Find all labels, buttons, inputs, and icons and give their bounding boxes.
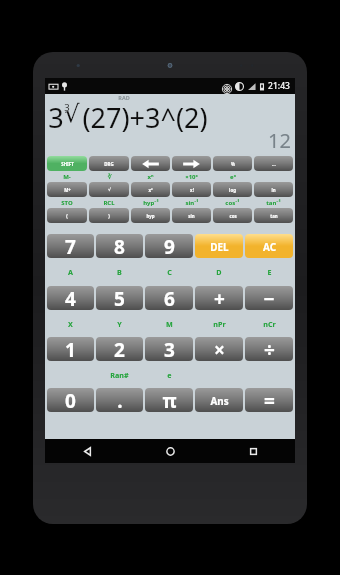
button[interactable]: x²	[131, 182, 170, 197]
staticText: .	[117, 388, 123, 412]
button[interactable]: Recent apps	[212, 439, 295, 463]
staticText: tan	[270, 213, 278, 219]
button[interactable]: DRG	[89, 156, 129, 171]
staticText: A	[68, 267, 73, 277]
staticText: DRG	[104, 161, 114, 167]
staticText: x!	[190, 187, 194, 193]
button[interactable]: 8	[96, 234, 143, 258]
button[interactable]: hyp	[131, 208, 170, 223]
staticText: hyp	[146, 213, 155, 219]
staticText: 12	[268, 127, 291, 154]
staticText: hyp⁻¹	[143, 199, 159, 207]
staticText: eˣ	[230, 173, 236, 181]
staticText: ×	[214, 337, 225, 361]
staticText: RCL	[103, 199, 115, 207]
staticText: ∛	[107, 173, 112, 180]
button[interactable]: …	[254, 156, 293, 171]
staticText: SHIFT	[61, 161, 74, 167]
staticText: %	[231, 161, 235, 167]
button[interactable]: 0	[47, 388, 94, 412]
button[interactable]: =	[245, 388, 293, 412]
button[interactable]: Ans	[195, 388, 243, 412]
staticText: E	[267, 267, 272, 277]
button[interactable]: tan	[254, 208, 293, 223]
staticText: D	[216, 267, 222, 277]
button[interactable]: cos	[213, 208, 252, 223]
button[interactable]: DEL	[195, 234, 243, 258]
staticText: M	[166, 319, 173, 329]
button[interactable]: Back	[45, 439, 129, 463]
staticText: RAD	[118, 94, 130, 101]
staticText: AC	[263, 240, 276, 253]
staticText: =	[264, 388, 275, 412]
button[interactable]: SHIFT	[47, 156, 87, 171]
button[interactable]: sin	[172, 208, 211, 223]
staticText: 1	[65, 337, 76, 361]
button[interactable]: log	[213, 182, 252, 197]
staticText: ln	[271, 187, 276, 193]
button[interactable]: +	[195, 286, 243, 310]
button[interactable]: 7	[47, 234, 94, 258]
button[interactable]: Cursor right	[172, 156, 211, 171]
staticText: 7	[65, 234, 76, 258]
staticText: e	[167, 370, 172, 380]
staticText: Ran#	[110, 370, 129, 380]
staticText: DEL	[210, 240, 229, 253]
staticText: 21:43	[268, 80, 290, 92]
button[interactable]: M+	[47, 182, 87, 197]
button[interactable]: √	[89, 182, 129, 197]
button[interactable]: (	[47, 208, 87, 223]
button[interactable]: AC	[245, 234, 293, 258]
staticText: 6	[164, 286, 175, 310]
staticText: Y	[117, 319, 122, 329]
staticText: ÷	[264, 337, 275, 361]
staticText: (	[66, 213, 68, 219]
staticText: 9	[164, 234, 175, 258]
staticText: M-	[63, 173, 71, 181]
staticText: 2	[114, 337, 125, 361]
button[interactable]: %	[213, 156, 252, 171]
staticText: log	[229, 187, 236, 193]
staticText: xⁿ	[147, 173, 154, 181]
button[interactable]: .	[96, 388, 143, 412]
staticText: 3	[64, 101, 70, 114]
staticText: nCr	[263, 319, 276, 329]
button[interactable]: 5	[96, 286, 143, 310]
button[interactable]: ln	[254, 182, 293, 197]
staticText: nPr	[213, 319, 226, 329]
staticText: √	[64, 100, 80, 128]
staticText: +	[214, 286, 225, 310]
staticText: STO	[61, 199, 73, 207]
staticText: sin	[188, 213, 195, 219]
staticText: 5	[114, 286, 125, 310]
button[interactable]: Cursor left	[131, 156, 170, 171]
staticText: )	[108, 213, 110, 219]
button[interactable]: 4	[47, 286, 94, 310]
button[interactable]: −	[245, 286, 293, 310]
button[interactable]: π	[145, 388, 193, 412]
staticText: tan⁻¹	[266, 199, 281, 207]
staticText: ×10ˣ	[185, 173, 198, 181]
button[interactable]: 1	[47, 337, 94, 361]
staticText: 4	[65, 286, 76, 310]
staticText: x²	[148, 187, 153, 193]
button[interactable]: ÷	[245, 337, 293, 361]
staticText: …	[272, 161, 276, 167]
staticText: sin⁻¹	[185, 199, 199, 207]
button[interactable]: 6	[145, 286, 193, 310]
button[interactable]: 9	[145, 234, 193, 258]
button[interactable]: 3	[145, 337, 193, 361]
staticText: 0	[65, 388, 76, 412]
staticText: 3	[48, 99, 64, 136]
button[interactable]: 2	[96, 337, 143, 361]
staticText: 3	[164, 337, 175, 361]
staticText: cos⁻¹	[225, 199, 240, 207]
button[interactable]: ×	[195, 337, 243, 361]
staticText: B	[117, 267, 122, 277]
button[interactable]: Home	[129, 439, 212, 463]
button[interactable]: x!	[172, 182, 211, 197]
staticText: Ans	[210, 394, 229, 407]
staticText: −	[263, 286, 275, 310]
staticText: cos	[229, 213, 237, 219]
button[interactable]: )	[89, 208, 129, 223]
